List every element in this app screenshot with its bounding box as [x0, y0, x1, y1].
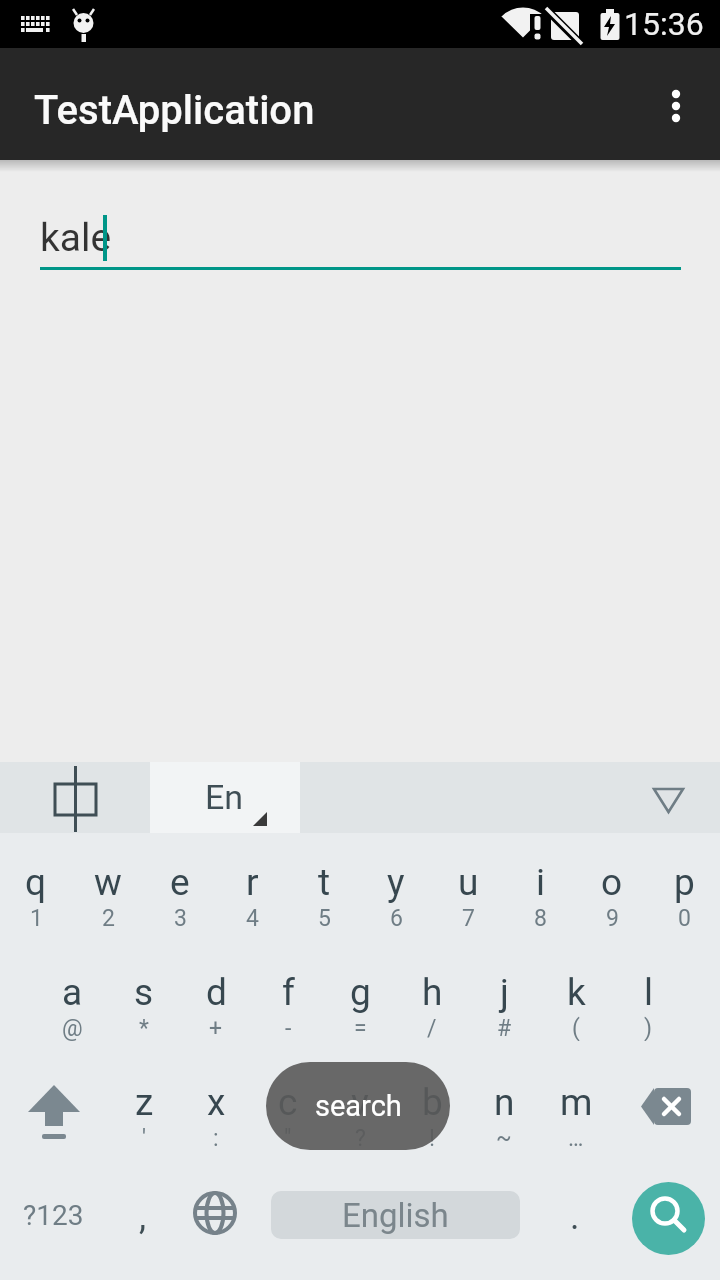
staticText: # — [497, 1015, 512, 1041]
button[interactable]: x — [180, 1053, 252, 1163]
staticText: y — [387, 861, 405, 904]
staticText: w — [94, 861, 122, 904]
staticText: : — [213, 1125, 219, 1151]
button[interactable]: d — [180, 943, 252, 1053]
button[interactable]: r — [216, 833, 288, 943]
button[interactable]: g — [324, 943, 396, 1053]
staticText: ( — [572, 1015, 580, 1041]
button[interactable] — [251, 1163, 539, 1280]
staticText: x — [207, 1081, 226, 1124]
button[interactable] — [612, 1053, 720, 1163]
staticText: 9 — [606, 905, 619, 931]
button[interactable] — [107, 1163, 179, 1280]
staticText: + — [209, 1015, 223, 1041]
staticText: - — [285, 1015, 292, 1041]
staticText: English — [342, 1196, 449, 1235]
staticText: u — [458, 861, 479, 904]
button[interactable]: c — [252, 1053, 324, 1163]
staticText: 4 — [246, 905, 259, 931]
staticText: e — [170, 861, 190, 904]
staticText: / — [427, 1015, 437, 1041]
button[interactable] — [179, 1163, 251, 1280]
button[interactable]: p — [648, 833, 720, 943]
staticText: kale — [40, 215, 112, 261]
button[interactable]: n — [468, 1053, 540, 1163]
button[interactable] — [611, 1163, 720, 1280]
staticText: 5 — [318, 905, 331, 931]
button[interactable]: b — [396, 1053, 468, 1163]
button[interactable]: j — [468, 943, 540, 1053]
staticText: 0 — [678, 905, 691, 931]
staticText: 1 — [30, 905, 43, 931]
button[interactable]: v — [324, 1053, 396, 1163]
button[interactable] — [0, 1163, 107, 1280]
button[interactable] — [150, 762, 300, 833]
button[interactable] — [0, 762, 150, 833]
staticText: j — [500, 971, 509, 1014]
button[interactable]: u — [432, 833, 504, 943]
button[interactable] — [40, 200, 681, 272]
button[interactable] — [539, 1163, 611, 1280]
button[interactable]: w — [72, 833, 144, 943]
button[interactable]: f — [252, 943, 324, 1053]
staticText: q — [25, 861, 47, 904]
staticText: , — [139, 1196, 147, 1238]
button[interactable]: q — [0, 833, 72, 943]
staticText: p — [674, 861, 695, 904]
staticText: 6 — [390, 905, 403, 931]
button[interactable]: t — [288, 833, 360, 943]
staticText: r — [246, 861, 259, 904]
staticText: TestApplication — [34, 87, 315, 134]
staticText: b — [422, 1081, 443, 1124]
button[interactable]: z — [108, 1053, 180, 1163]
staticText: c — [278, 1081, 298, 1124]
staticText: l — [644, 971, 653, 1014]
staticText: d — [206, 971, 227, 1014]
staticText: ) — [644, 1015, 653, 1041]
staticText: i — [536, 861, 545, 904]
staticText: 2 — [102, 905, 115, 931]
staticText: s — [134, 971, 154, 1014]
button[interactable]: y — [360, 833, 432, 943]
staticText: ! — [429, 1125, 435, 1151]
staticText: o — [601, 861, 623, 904]
staticText: * — [139, 1015, 149, 1041]
staticText: g — [350, 971, 371, 1014]
staticText: 3 — [174, 905, 187, 931]
staticText: n — [494, 1081, 515, 1124]
button[interactable]: h — [396, 943, 468, 1053]
staticText: z — [135, 1081, 154, 1124]
staticText: En — [205, 777, 244, 817]
button[interactable] — [646, 62, 706, 148]
staticText: v — [351, 1081, 369, 1124]
staticText: h — [422, 971, 443, 1014]
button[interactable]: e — [144, 833, 216, 943]
staticText: t — [318, 861, 331, 904]
staticText: = — [354, 1015, 367, 1041]
staticText: 15:36 — [624, 5, 704, 43]
button[interactable]: k — [540, 943, 612, 1053]
button[interactable]: s — [108, 943, 180, 1053]
staticText: ? — [355, 1125, 366, 1151]
button[interactable]: l — [612, 943, 684, 1053]
staticText: 8 — [534, 905, 547, 931]
staticText: … — [568, 1125, 584, 1151]
button[interactable]: i — [504, 833, 576, 943]
staticText: . — [570, 1196, 580, 1238]
button[interactable] — [0, 1053, 108, 1163]
staticText: 7 — [462, 905, 475, 931]
staticText: search — [315, 1089, 402, 1123]
button[interactable]: o — [576, 833, 648, 943]
button[interactable]: a — [36, 943, 108, 1053]
staticText: ' — [142, 1125, 147, 1151]
button[interactable]: m — [540, 1053, 612, 1163]
staticText: k — [567, 971, 586, 1014]
staticText: ?123 — [23, 1199, 84, 1232]
staticText: ~ — [496, 1125, 512, 1151]
staticText: @ — [62, 1015, 83, 1041]
button[interactable] — [300, 762, 720, 833]
staticText: m — [560, 1081, 593, 1124]
staticText: " — [284, 1125, 292, 1151]
staticText: a — [62, 971, 83, 1014]
staticText: f — [282, 971, 295, 1014]
